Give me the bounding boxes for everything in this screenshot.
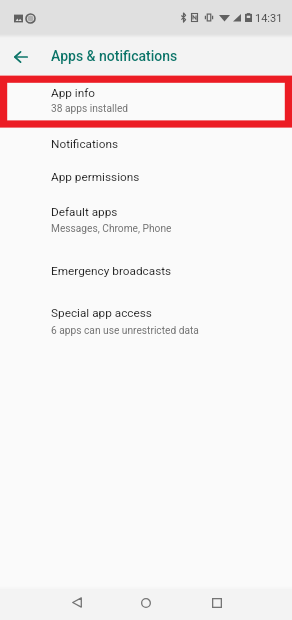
button[interactable]: Home [130,589,162,620]
staticText: Default apps [51,205,118,219]
staticText: App permissions [51,170,140,184]
staticText: Messages, Chrome, Phone [51,223,172,235]
button[interactable]: Notifications [0,127,292,162]
staticText: Notifications [51,137,119,151]
staticText: 38 apps installed [51,103,129,115]
staticText: 14:31 [255,12,283,25]
button[interactable]: Back [61,589,93,620]
button[interactable]: Default apps [0,194,292,246]
staticText: Apps & notifications [51,48,178,64]
staticText: Emergency broadcasts [51,264,172,278]
staticText: App info [51,86,96,100]
button[interactable]: Special app access [0,295,292,347]
button[interactable]: Recent apps [201,589,233,620]
staticText: Special app access [51,306,152,320]
button[interactable]: Emergency broadcasts [0,255,292,290]
button[interactable]: App info [0,75,292,127]
button[interactable]: App permissions [0,161,292,196]
button[interactable]: Navigate up [6,41,35,70]
staticText: 6 apps can use unrestricted data [51,325,199,337]
